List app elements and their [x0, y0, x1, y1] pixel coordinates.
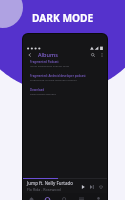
button[interactable]: Favorite [96, 182, 105, 191]
button[interactable]: More options [98, 51, 105, 58]
button[interactable]: Search [89, 51, 96, 58]
staticText: Download [30, 88, 44, 92]
staticText: Downloaded episodes [30, 92, 56, 95]
button[interactable]: Next track [87, 182, 96, 191]
button[interactable]: Fragmented Podcast [23, 59, 107, 73]
button[interactable]: Playlists [73, 193, 90, 200]
button[interactable]: Back [26, 51, 33, 58]
button[interactable]: Home [23, 193, 39, 200]
button[interactable]: Discover [56, 193, 73, 200]
button[interactable]: Profile [90, 193, 107, 200]
staticText: Fragmented Podcast [30, 60, 59, 64]
staticText: About Fragmented Podcast show [30, 64, 69, 67]
button[interactable]: Play [78, 182, 87, 191]
staticText: DARK MODE [32, 11, 94, 25]
button[interactable]: Episodes [39, 193, 56, 200]
staticText: Flo Rida - Rosewood [27, 187, 61, 192]
staticText: Fragmented: Android developer podcast [30, 74, 86, 78]
button[interactable]: Download [23, 87, 107, 101]
staticText: Jump ft. Nelly Furtado [27, 180, 73, 186]
staticText: Albums [38, 51, 58, 58]
staticText: Fragmented Android developer podcast [30, 78, 77, 81]
button[interactable]: Fragmented: Android developer podcast [23, 73, 107, 87]
